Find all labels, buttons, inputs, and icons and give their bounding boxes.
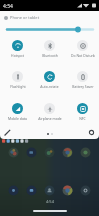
button[interactable]: Edit tiles xyxy=(2,127,13,138)
staticText: Flashlight xyxy=(10,84,26,89)
staticText: Hotspot xyxy=(11,53,24,58)
button[interactable]: App xyxy=(8,185,19,196)
button[interactable]: App xyxy=(80,185,91,196)
button[interactable]: Battery Saver xyxy=(67,71,98,89)
staticText: Phone or tablet xyxy=(10,15,40,20)
button[interactable]: Airplane mode xyxy=(34,103,65,121)
button[interactable]: App xyxy=(44,185,55,196)
button[interactable]: Auto-rotate xyxy=(34,71,65,89)
staticText: Battery Saver xyxy=(72,84,94,89)
button[interactable]: Bluetooth xyxy=(34,40,65,58)
button[interactable]: Do Not Disturb xyxy=(67,40,98,58)
button[interactable]: App xyxy=(62,185,73,196)
staticText: Mobile data xyxy=(8,116,27,121)
button[interactable]: NFC xyxy=(67,103,98,121)
button[interactable]: Hotspot xyxy=(2,40,33,58)
button[interactable]: App xyxy=(26,185,37,196)
staticText: Auto-rotate xyxy=(40,84,59,89)
button[interactable]: Settings xyxy=(86,127,97,138)
button[interactable]: App xyxy=(62,147,73,158)
button[interactable]: App xyxy=(80,147,91,158)
staticText: 4:54 xyxy=(3,3,13,10)
button[interactable]: App xyxy=(26,147,37,158)
staticText: Airplane mode xyxy=(38,116,62,121)
button[interactable]: App xyxy=(8,147,19,158)
staticText: Bluetooth xyxy=(42,53,58,58)
button[interactable]: App xyxy=(44,147,55,158)
button[interactable]: Flashlight xyxy=(2,71,33,89)
staticText: Do Not Disturb xyxy=(71,53,95,58)
button[interactable]: Mobile data xyxy=(2,103,33,121)
staticText: NFC xyxy=(79,116,86,121)
staticText: 4:54 xyxy=(46,199,54,204)
